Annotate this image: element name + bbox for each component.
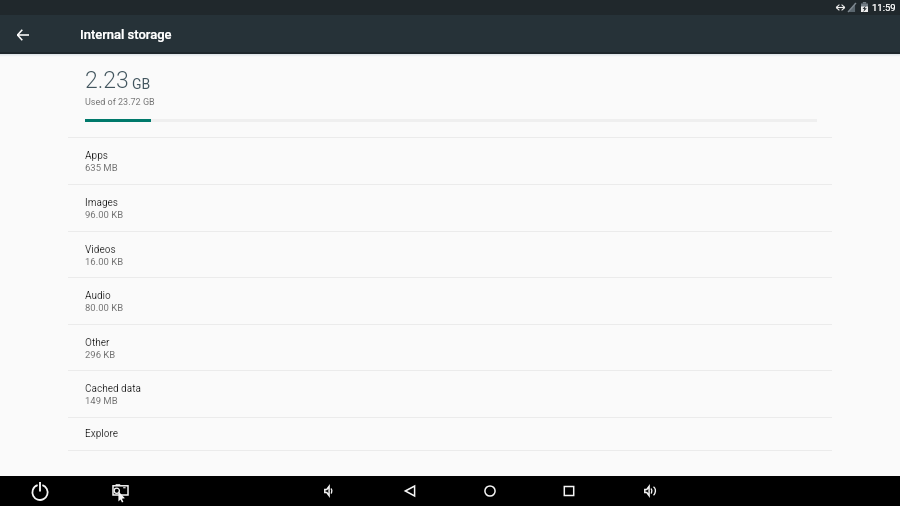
staticText: Videos [85, 244, 116, 256]
staticText: Images [85, 197, 119, 209]
staticText: Explore [85, 428, 118, 440]
staticText: Apps [85, 150, 108, 162]
staticText: 2.23 [85, 67, 129, 94]
staticText: Used of 23.72 GB [85, 97, 155, 108]
button[interactable]: Other [0, 324, 900, 371]
button[interactable]: Back [395, 476, 425, 506]
button[interactable]: Screenshot [105, 476, 135, 506]
button[interactable]: Volume up [635, 476, 665, 506]
staticText: 635 MB [85, 162, 118, 173]
staticText: 16.00 KB [85, 256, 124, 267]
button[interactable]: Audio [0, 277, 900, 324]
staticText: Other [85, 337, 110, 349]
staticText: 296 KB [85, 349, 116, 360]
button[interactable]: Cached data [0, 370, 900, 417]
button[interactable]: Home [475, 476, 505, 506]
staticText: 11:59 [872, 2, 896, 13]
staticText: 96.00 KB [85, 209, 124, 220]
button[interactable]: Power [25, 476, 55, 506]
button[interactable]: Images [0, 184, 900, 231]
staticText: Audio [85, 290, 111, 302]
staticText: 149 MB [85, 395, 118, 406]
button[interactable]: Recents [554, 476, 584, 506]
staticText: GB [132, 76, 151, 92]
button[interactable]: Volume down [315, 476, 345, 506]
button[interactable]: Videos [0, 231, 900, 278]
button[interactable]: Back [5, 15, 41, 54]
button[interactable]: Explore [0, 417, 900, 451]
button[interactable]: Apps [0, 137, 900, 184]
staticText: Internal storage [80, 27, 172, 42]
staticText: 80.00 KB [85, 302, 124, 313]
staticText: Cached data [85, 383, 141, 395]
